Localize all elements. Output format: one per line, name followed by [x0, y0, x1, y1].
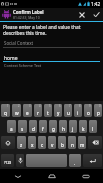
button[interactable]: y	[54, 104, 62, 117]
staticText: d	[32, 126, 35, 132]
staticText: x	[31, 142, 34, 148]
button[interactable]: x	[28, 136, 36, 149]
button[interactable]: c	[38, 136, 46, 149]
staticText: .	[74, 160, 76, 166]
staticText: 81:42:33, May 10	[13, 15, 40, 20]
staticText: v	[51, 142, 54, 148]
staticText: n	[71, 142, 74, 148]
staticText: 1	[7, 104, 9, 108]
button[interactable]: t	[44, 104, 52, 117]
staticText: r	[37, 110, 39, 116]
staticText: Confirm Label	[13, 9, 44, 15]
button[interactable]: ?123	[1, 154, 14, 167]
button[interactable]: u	[64, 104, 72, 117]
button[interactable]	[83, 154, 102, 167]
button[interactable]: d	[29, 120, 37, 133]
button[interactable]: f	[39, 120, 47, 133]
button[interactable]: .	[69, 154, 81, 167]
button[interactable]: r	[34, 104, 42, 117]
staticText: k	[82, 126, 85, 132]
staticText: Context Scheme Text	[4, 63, 42, 68]
staticText: g	[52, 126, 55, 132]
staticText: 9	[89, 104, 91, 108]
staticText: s	[21, 126, 24, 132]
button[interactable]	[1, 136, 15, 149]
staticText: Please enter a label and value that desc…	[3, 24, 81, 36]
staticText: ?123	[4, 160, 12, 165]
staticText: o	[87, 110, 90, 116]
staticText: 6	[59, 104, 61, 108]
staticText: y	[57, 110, 60, 116]
button[interactable]: g	[49, 120, 57, 133]
button[interactable]: j	[69, 120, 77, 133]
button[interactable]: p	[94, 104, 102, 117]
staticText: 5	[49, 104, 51, 108]
staticText: p	[97, 110, 100, 116]
button[interactable]: q	[1, 104, 10, 117]
button[interactable]: z	[17, 136, 26, 149]
button[interactable]: Confirm	[89, 8, 103, 21]
button[interactable]: Recents	[69, 169, 103, 183]
staticText: home	[4, 55, 18, 62]
button[interactable]	[26, 154, 67, 167]
staticText: q	[4, 110, 7, 116]
button[interactable]: Cancel	[75, 8, 89, 21]
button[interactable]: m	[78, 136, 86, 149]
button[interactable]: Hide keyboard	[0, 169, 35, 183]
staticText: 2	[18, 104, 20, 108]
staticText: 8	[79, 104, 81, 108]
button[interactable]: l	[89, 120, 97, 133]
staticText: h	[62, 126, 65, 132]
staticText: c	[41, 142, 44, 148]
staticText: a	[10, 126, 13, 132]
staticText: 4	[39, 104, 41, 108]
staticText: b	[61, 142, 64, 148]
staticText: 3	[29, 104, 31, 108]
staticText: t	[47, 110, 49, 116]
staticText: z	[20, 142, 23, 148]
staticText: j	[72, 126, 74, 132]
button[interactable]: b	[58, 136, 66, 149]
button[interactable]: o	[84, 104, 92, 117]
staticText: 7	[69, 104, 71, 108]
button[interactable]: e	[23, 104, 32, 117]
button[interactable]: k	[79, 120, 87, 133]
staticText: i	[77, 110, 79, 116]
staticText: 0	[99, 104, 101, 108]
button[interactable]: v	[48, 136, 56, 149]
button[interactable]: s	[18, 120, 27, 133]
button[interactable]	[16, 154, 24, 167]
staticText: Social Context	[4, 40, 34, 46]
button[interactable]: w	[12, 104, 21, 117]
staticText: l	[92, 126, 94, 132]
staticText: e	[26, 110, 29, 116]
button[interactable]: Home	[35, 169, 69, 183]
button[interactable]: i	[74, 104, 82, 117]
button[interactable]: a	[7, 120, 16, 133]
staticText: f	[42, 126, 44, 132]
staticText: 1:42	[91, 1, 101, 7]
staticText: m	[80, 142, 85, 148]
staticText: w	[15, 110, 19, 116]
staticText: u	[67, 110, 70, 116]
button[interactable]	[88, 136, 102, 149]
button[interactable]: h	[59, 120, 67, 133]
button[interactable]: n	[68, 136, 76, 149]
